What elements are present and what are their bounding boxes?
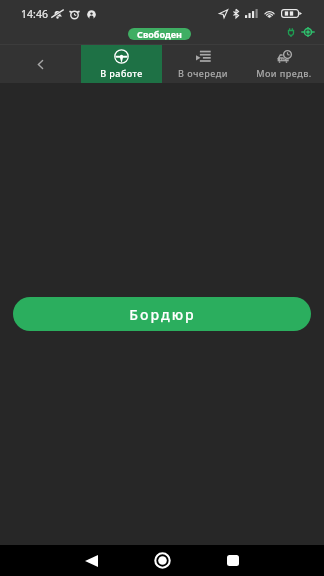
staticText: Мои предв. (256, 67, 312, 79)
button[interactable]: Back (0, 45, 81, 83)
button[interactable]: Recents (213, 545, 253, 576)
button[interactable]: Бордюр (13, 297, 311, 331)
staticText: Свободен (137, 28, 182, 40)
button[interactable]: В работе (81, 45, 162, 83)
staticText: В очереди (178, 67, 228, 79)
button[interactable]: Back (71, 545, 111, 576)
button[interactable]: В очереди (162, 45, 243, 83)
button[interactable]: Home (142, 545, 182, 576)
staticText: Бордюр (129, 305, 196, 324)
button[interactable]: Мои предв. (243, 45, 324, 83)
staticText: 14:46 (21, 7, 48, 21)
staticText: В работе (100, 67, 143, 79)
